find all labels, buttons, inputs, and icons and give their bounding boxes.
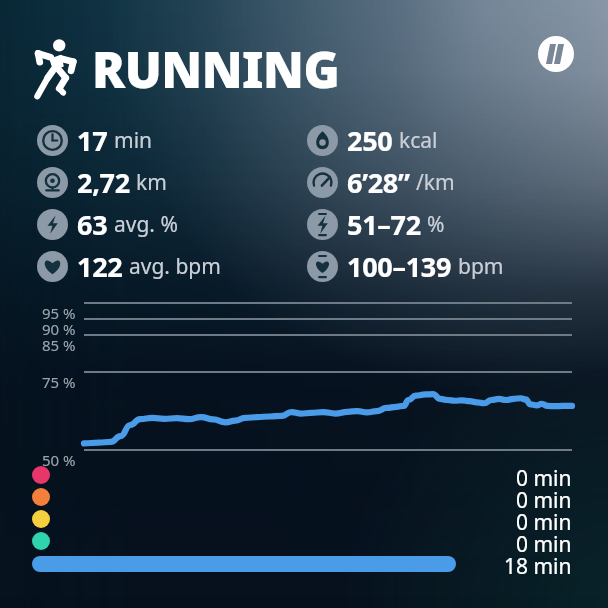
button[interactable]: RUNNING — [26, 36, 356, 100]
button[interactable]: 100–139 — [307, 248, 507, 284]
staticText: 90 % — [42, 319, 76, 337]
staticText: 51–72 — [347, 206, 421, 242]
staticText: 0 min — [516, 530, 572, 552]
staticText: RUNNING — [92, 36, 340, 100]
staticText: 0 min — [516, 464, 572, 486]
staticText: 6’28” — [347, 164, 410, 200]
staticText: 95 % — [42, 303, 76, 321]
staticText: 0 min — [516, 486, 572, 508]
staticText: avg. bpm — [129, 252, 221, 281]
staticText: bpm — [458, 252, 504, 281]
staticText: /km — [416, 168, 455, 197]
staticText: kcal — [399, 126, 438, 155]
button[interactable]: 17 — [37, 122, 237, 158]
staticText: avg. % — [114, 210, 178, 239]
staticText: 63 — [77, 206, 108, 242]
staticText: 50 % — [42, 450, 76, 468]
staticText: 100–139 — [347, 248, 452, 284]
staticText: 17 — [77, 122, 108, 158]
button[interactable]: 250 — [307, 122, 507, 158]
button[interactable]: 51–72 — [307, 206, 507, 242]
button[interactable]: 18 min — [32, 552, 572, 576]
staticText: % — [427, 210, 445, 239]
button[interactable]: 0 min — [32, 530, 572, 552]
button[interactable]: 0 min — [32, 464, 572, 486]
staticText: 18 min — [504, 552, 572, 576]
button[interactable]: 6’28” — [307, 164, 507, 200]
staticText: 75 % — [42, 372, 76, 390]
button[interactable]: 2,72 — [37, 164, 237, 200]
button[interactable]: 63 — [37, 206, 237, 242]
staticText: 2,72 — [77, 164, 130, 200]
button[interactable]: 122 — [37, 248, 237, 284]
button[interactable]: 0 min — [32, 508, 572, 530]
staticText: 122 — [77, 248, 123, 284]
staticText: km — [136, 168, 167, 197]
staticText: 250 — [347, 122, 393, 158]
staticText: 85 % — [42, 335, 76, 353]
button[interactable]: App logo — [538, 36, 574, 72]
staticText: min — [114, 126, 153, 155]
button[interactable]: 0 min — [32, 486, 572, 508]
staticText: 0 min — [516, 508, 572, 530]
